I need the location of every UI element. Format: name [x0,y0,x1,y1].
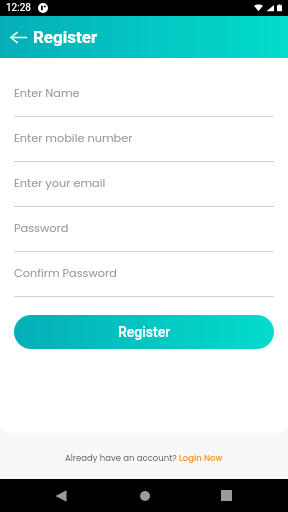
button[interactable]: Already have an account? [65,452,223,464]
staticText: Password [14,220,69,236]
staticText: Register [33,27,98,47]
staticText: Login Now [179,452,223,464]
button[interactable]: Back [6,25,30,49]
staticText: Enter your email [14,175,106,191]
staticText: Already have an account? [65,452,179,464]
staticText: Enter mobile number [14,130,133,146]
button[interactable]: Home [128,479,161,512]
staticText: Enter Name [14,85,80,101]
button[interactable]: Register [14,315,274,349]
staticText: 12:28 [6,2,31,14]
staticText: Confirm Password [14,265,117,281]
staticText: Register [118,324,171,340]
button[interactable]: Recent apps [210,479,243,512]
button[interactable]: Back [44,479,77,512]
